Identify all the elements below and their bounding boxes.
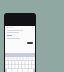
- button[interactable]: Keyboard: [5, 53, 35, 72]
- button[interactable]: Send: [27, 42, 33, 44]
